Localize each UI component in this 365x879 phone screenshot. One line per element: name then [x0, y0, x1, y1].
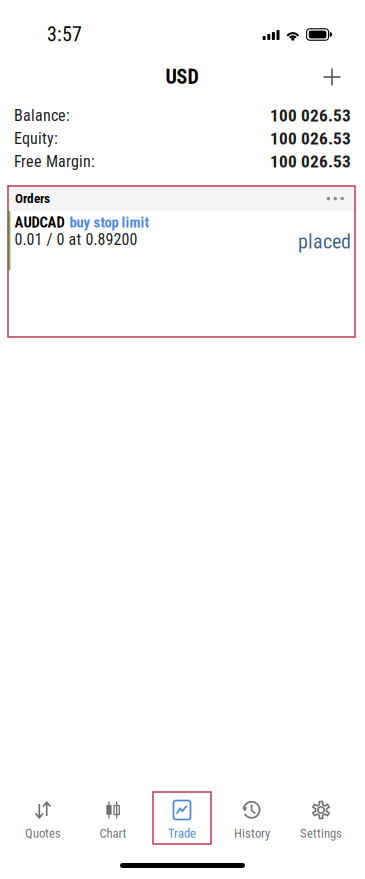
staticText: 3:57 [47, 23, 82, 46]
button[interactable]: Settings [292, 792, 350, 844]
staticText: USD [165, 65, 198, 89]
button[interactable]: AUDCAD [8, 211, 355, 270]
button[interactable]: Chart [84, 792, 142, 844]
button[interactable]: Trade [153, 792, 211, 844]
staticText: History [234, 826, 270, 841]
button[interactable]: History [223, 792, 281, 844]
staticText: 100 026.53 [270, 151, 351, 172]
staticText: Free Margin: [14, 152, 95, 171]
staticText: 100 026.53 [270, 105, 351, 126]
staticText: AUDCAD [14, 214, 64, 231]
staticText: 100 026.53 [270, 128, 351, 149]
staticText: 0.01 / 0 at 0.89200 [14, 230, 137, 249]
staticText: Settings [300, 826, 342, 841]
button[interactable]: Quotes [14, 792, 72, 844]
staticText: Equity: [14, 129, 58, 148]
staticText: placed [298, 230, 351, 253]
button[interactable]: Orders options [300, 186, 344, 210]
staticText: buy stop limit [69, 214, 148, 231]
staticText: Balance: [14, 106, 70, 125]
staticText: Chart [99, 826, 126, 841]
staticText: Orders [15, 191, 50, 206]
staticText: Trade [168, 826, 196, 841]
staticText: Quotes [25, 826, 61, 841]
button[interactable]: Add symbol [310, 60, 354, 94]
